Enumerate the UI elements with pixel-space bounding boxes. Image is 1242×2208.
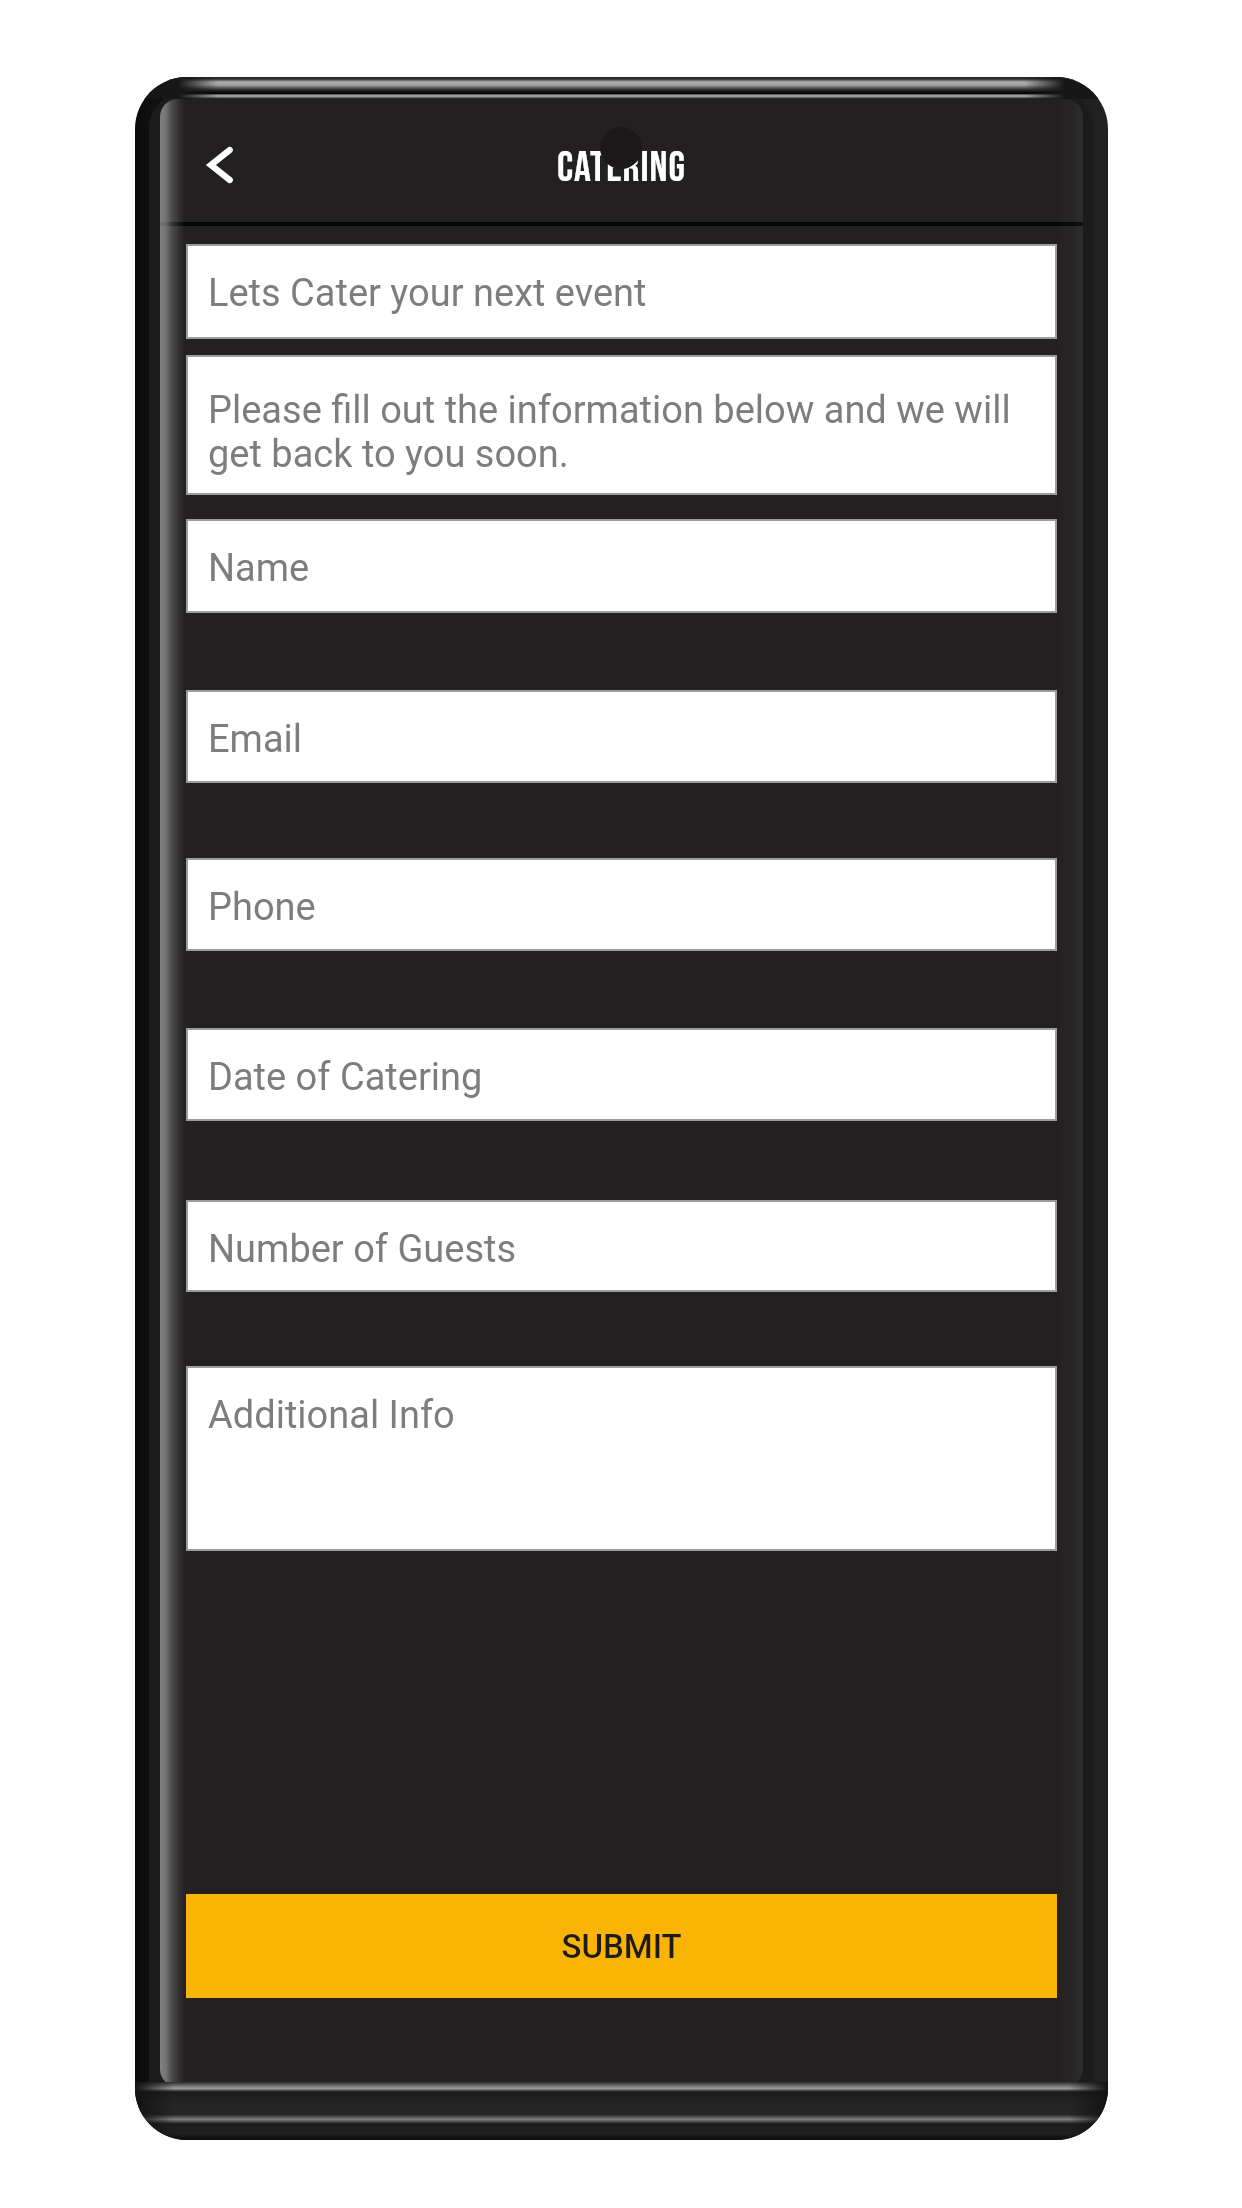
staticText: SUBMIT xyxy=(561,1927,682,1966)
button[interactable]: Additional Info xyxy=(188,1368,1055,1549)
staticText: Date of Catering xyxy=(208,1055,1032,1100)
staticText: Phone xyxy=(208,885,1032,930)
button[interactable]: Please fill out the information below an… xyxy=(188,357,1055,493)
staticText: Name xyxy=(208,546,1032,591)
button[interactable]: Email xyxy=(188,692,1055,781)
staticText: Additional Info xyxy=(208,1393,1032,1438)
button[interactable]: Date of Catering xyxy=(188,1030,1055,1119)
staticText: Number of Guests xyxy=(208,1227,1032,1272)
button[interactable]: Name xyxy=(188,521,1055,611)
staticText: Email xyxy=(208,717,1032,762)
button[interactable]: Lets Cater your next event xyxy=(188,246,1055,337)
button[interactable]: Number of Guests xyxy=(188,1202,1055,1290)
staticText: Please fill out the information below an… xyxy=(208,388,1032,476)
staticText: Lets Cater your next event xyxy=(208,271,1032,316)
button[interactable]: Phone xyxy=(188,860,1055,949)
button[interactable]: Back xyxy=(180,122,256,198)
button[interactable]: SUBMIT xyxy=(186,1894,1057,1998)
staticText: CATERING xyxy=(557,143,686,193)
